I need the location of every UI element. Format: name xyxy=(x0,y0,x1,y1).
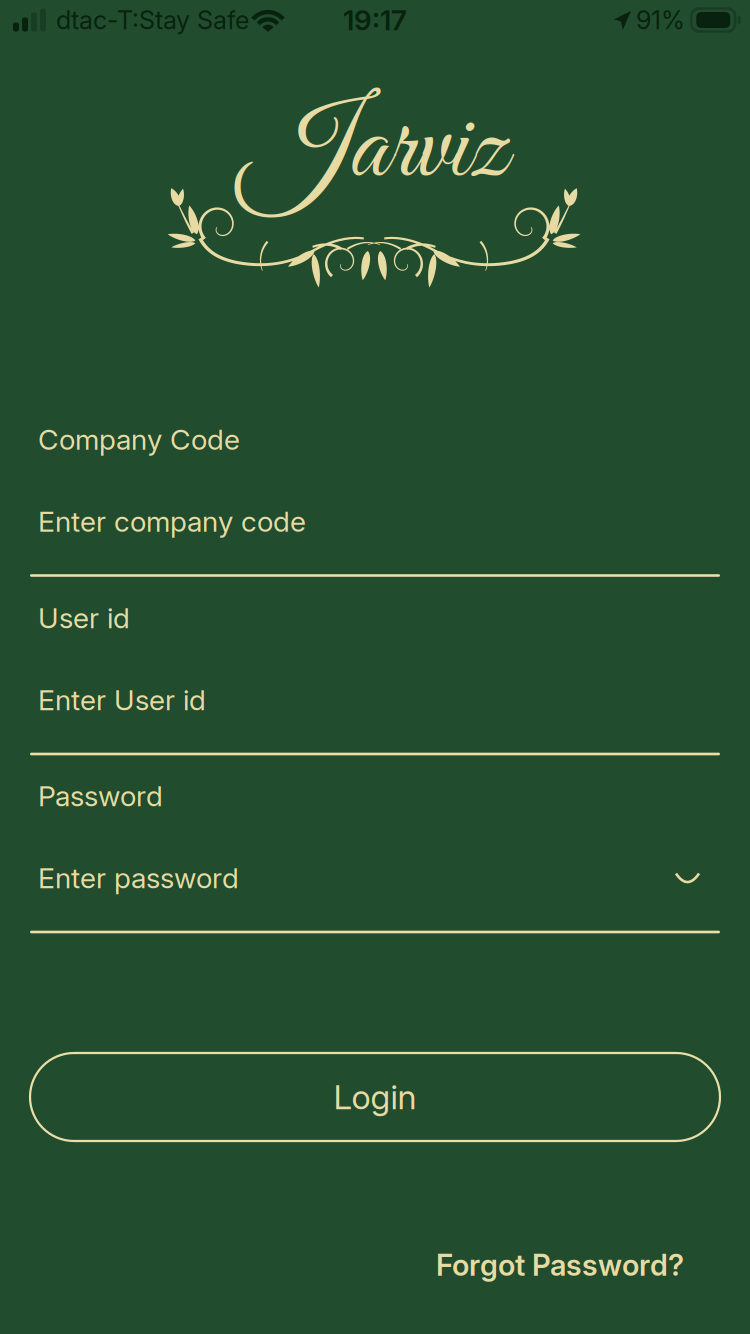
staticText: 19:17 xyxy=(343,3,407,37)
staticText: Login xyxy=(333,1077,416,1117)
staticText: Jarviz xyxy=(241,83,507,219)
staticText: dtac-T:Stay Safe xyxy=(56,5,249,35)
staticText: 91% xyxy=(636,5,685,35)
staticText: Enter company code xyxy=(38,504,306,539)
staticText: Company Code xyxy=(38,422,240,457)
staticText: Enter password xyxy=(38,861,239,895)
button[interactable]: Login xyxy=(30,1053,720,1141)
staticText: Forgot Password? xyxy=(436,1247,684,1283)
staticText: Enter User id xyxy=(38,683,206,717)
button[interactable]: Forgot Password? xyxy=(430,1239,690,1291)
staticText: User id xyxy=(38,601,130,635)
staticText: Password xyxy=(38,779,163,813)
